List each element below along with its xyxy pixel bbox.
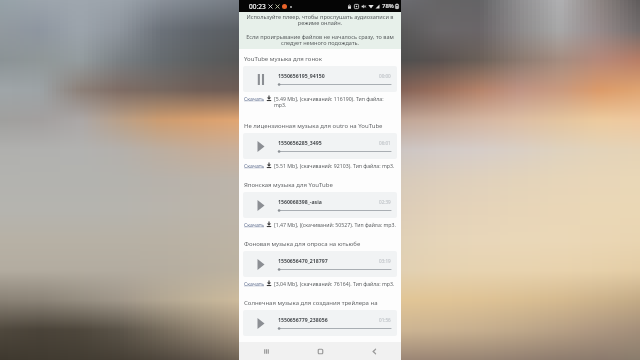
staticText: Скачать [244, 95, 264, 102]
staticText: 03:19 [379, 258, 391, 264]
button[interactable]: 1550656779_238056 [243, 310, 397, 336]
staticText: Скачать [244, 280, 264, 287]
staticText: [3,04 Mb], (скачиваний: 76164). Тип файл… [274, 280, 395, 287]
button[interactable]: Скачать [244, 280, 264, 287]
staticText: Солнечная музыка для создания трейлера н… [244, 299, 396, 307]
staticText: 02:39 [379, 199, 391, 205]
button[interactable]: Скачать [244, 95, 264, 102]
button[interactable]: 1550656470_218797 [243, 251, 397, 277]
staticText: YouTube музыка для гонок [244, 55, 322, 63]
staticText: Фоновая музыка для опроса на ютьюбе [244, 240, 361, 248]
button[interactable]: 1560068398_-asia [243, 192, 397, 218]
staticText: [1,47 Mb], ((скачиваний: 50527). Тип фай… [274, 221, 396, 228]
staticText: Если проигрывание файлов не началось сра… [244, 33, 396, 47]
staticText: 1550656779_238056 [278, 316, 379, 323]
staticText: Используйте плеер, чтобы прослушать ауди… [244, 13, 396, 27]
button[interactable]: Скачать [244, 221, 264, 228]
staticText: 06:01 [379, 140, 391, 146]
staticText: 78% [382, 2, 394, 10]
staticText: 1560068398_-asia [278, 198, 379, 205]
button[interactable]: Скачать [244, 162, 264, 169]
staticText: 00:23 [249, 2, 266, 11]
staticText: 1550656470_218797 [278, 257, 379, 264]
staticText: Не лицензионная музыка для outro на YouT… [244, 122, 383, 130]
staticText: Японская музыка для YouTube [244, 181, 333, 189]
staticText: [5.51 Mb], (скачиваний: 92103). Тип файл… [274, 162, 395, 169]
staticText: 1550656285_3495 [278, 139, 379, 146]
button[interactable]: 1550656285_3495 [243, 133, 397, 159]
button[interactable]: Back [347, 342, 401, 360]
button[interactable]: 1550656195_94150 [243, 66, 397, 92]
button[interactable]: Home [293, 342, 347, 360]
staticText: [5.49 Mb], (скачиваний: 116190). Тип фай… [274, 95, 396, 109]
staticText: 00:00 [379, 73, 391, 79]
staticText: Скачать [244, 221, 264, 228]
staticText: 1550656195_94150 [278, 72, 379, 79]
button[interactable]: Recent apps [239, 342, 293, 360]
staticText: 01:56 [379, 317, 391, 323]
staticText: Скачать [244, 162, 264, 169]
